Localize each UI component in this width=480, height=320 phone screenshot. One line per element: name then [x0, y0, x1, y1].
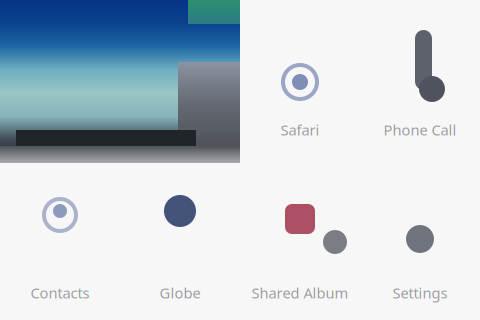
button[interactable]: Settings [360, 163, 480, 320]
button[interactable]: Safari [240, 0, 360, 163]
staticText: Shared Album [251, 283, 348, 302]
staticText: Contacts [30, 283, 89, 302]
staticText: Globe [159, 283, 200, 302]
button[interactable]: Globe [120, 163, 240, 320]
button[interactable]: Shared Album [240, 163, 360, 320]
staticText: Phone Call [383, 120, 456, 139]
staticText: Settings [392, 283, 447, 302]
button[interactable]: Contacts [0, 163, 120, 320]
button[interactable]: Phone Call [360, 0, 480, 163]
staticText: Safari [280, 120, 319, 139]
